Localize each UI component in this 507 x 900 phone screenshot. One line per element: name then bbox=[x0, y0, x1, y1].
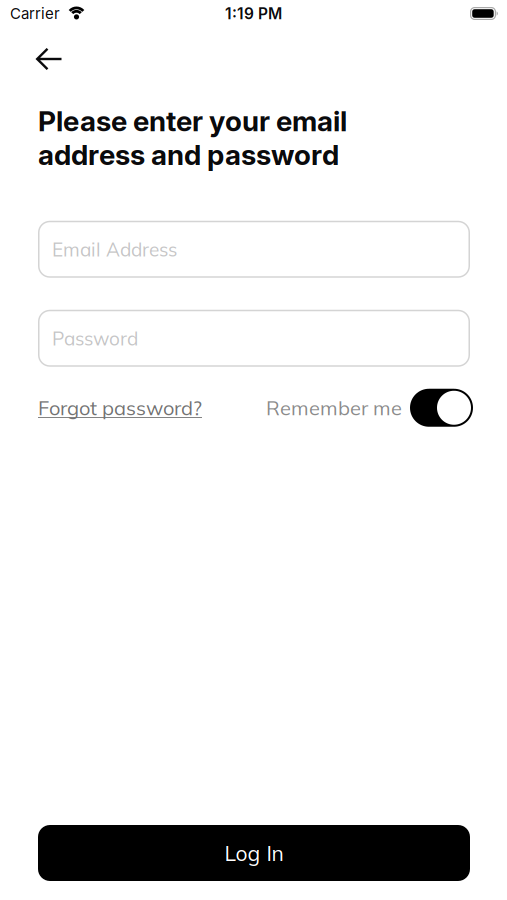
staticText: Log In bbox=[224, 840, 283, 866]
staticText: Password bbox=[52, 326, 138, 350]
staticText: Email Address bbox=[52, 237, 177, 261]
staticText: Please enter your email address and pass… bbox=[38, 104, 347, 172]
button[interactable]: Log In bbox=[38, 825, 470, 881]
button[interactable]: Password bbox=[38, 310, 470, 367]
staticText: Remember me bbox=[266, 395, 402, 420]
button[interactable]: Back bbox=[0, 27, 74, 78]
staticText: Carrier bbox=[10, 4, 60, 22]
button[interactable]: Remember me bbox=[410, 389, 473, 427]
button[interactable]: Forgot password? bbox=[38, 395, 202, 420]
staticText: 1:19 PM bbox=[225, 4, 282, 23]
staticText: Forgot password? bbox=[38, 395, 202, 420]
button[interactable]: Email Address bbox=[38, 221, 470, 278]
